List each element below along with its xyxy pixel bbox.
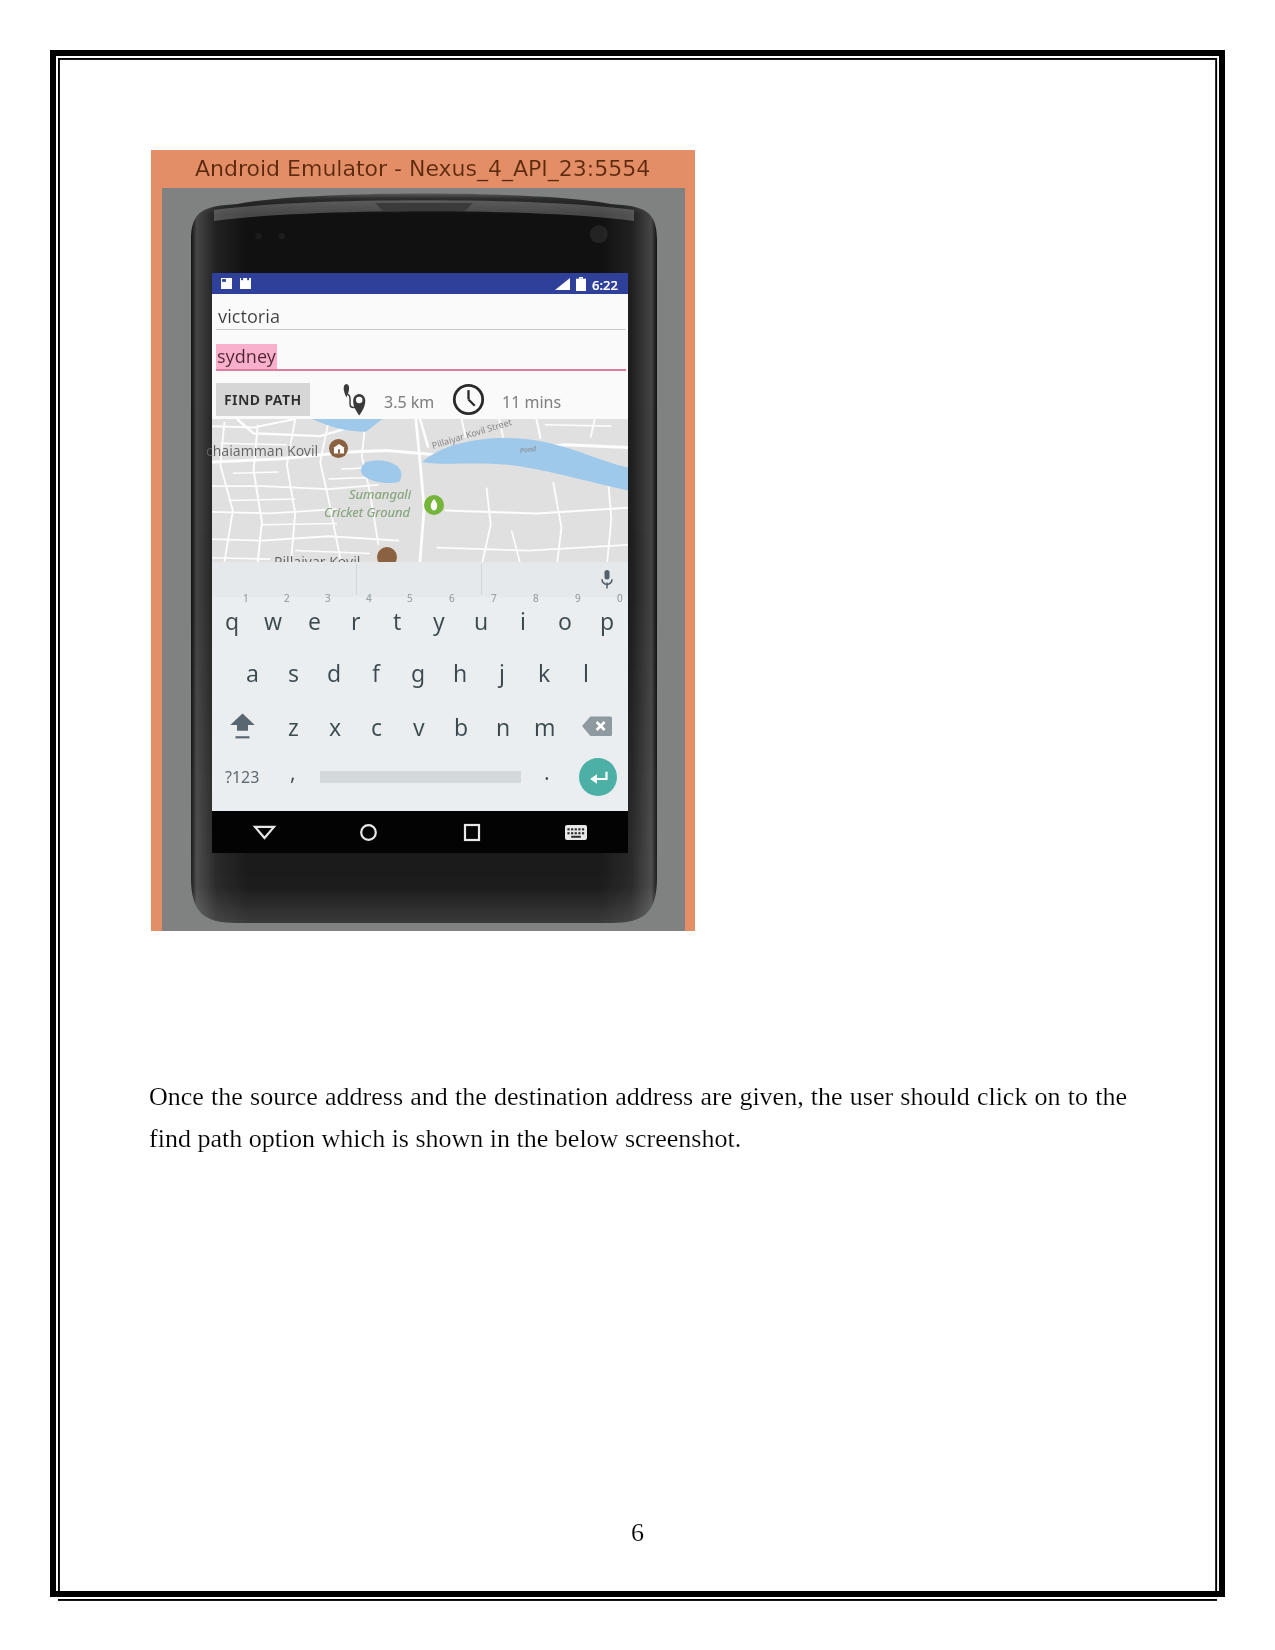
staticText: c [371, 711, 383, 742]
staticText: p [600, 605, 615, 636]
staticText: a [246, 657, 259, 688]
button[interactable]: n [482, 700, 524, 752]
button[interactable]: f [355, 646, 397, 698]
button[interactable]: 6 [418, 589, 460, 641]
staticText: g [411, 657, 426, 688]
staticText: d [327, 657, 342, 688]
staticText: 8 [533, 591, 539, 605]
button[interactable]: 5 [376, 589, 418, 641]
button[interactable]: h [439, 646, 481, 698]
button[interactable]: s [273, 646, 314, 698]
staticText: k [538, 657, 551, 688]
button[interactable]: . [527, 751, 567, 803]
button[interactable]: Home [316, 811, 420, 853]
button[interactable]: Back [212, 811, 316, 853]
staticText: sydney [217, 344, 276, 369]
staticText: 1 [243, 591, 249, 605]
staticText: x [329, 711, 342, 742]
button[interactable]: x [314, 700, 356, 752]
staticText: 11 mins [502, 391, 562, 413]
button[interactable]: Map [212, 419, 628, 562]
button[interactable]: Keyboard [524, 811, 628, 853]
button[interactable]: Shift [212, 700, 273, 752]
staticText: Pillaiyar Kovil Street [430, 415, 513, 451]
staticText: 3.5 km [384, 391, 435, 413]
staticText: 7 [491, 591, 497, 605]
staticText: 5 [407, 591, 413, 605]
staticText: 6:22 [592, 276, 618, 294]
staticText: i [520, 605, 526, 636]
staticText: h [453, 657, 468, 688]
button[interactable]: m [524, 700, 566, 752]
staticText: m [534, 711, 556, 742]
button[interactable]: FIND PATH [216, 383, 310, 416]
staticText: 6 [449, 591, 455, 605]
staticText: 0 [617, 591, 623, 605]
staticText: w [264, 605, 283, 636]
staticText: b [454, 711, 469, 742]
staticText: o [558, 605, 572, 636]
staticText: 2 [284, 591, 290, 605]
staticText: n [496, 711, 511, 742]
staticText: Pond [519, 444, 538, 456]
staticText: Sumangali [349, 485, 411, 503]
button[interactable]: j [481, 646, 523, 698]
button[interactable]: 4 [335, 589, 376, 641]
staticText: 3 [325, 591, 331, 605]
staticText: 6 [631, 1518, 644, 1547]
staticText: f [372, 657, 380, 688]
button[interactable]: l [565, 646, 607, 698]
button[interactable]: , [273, 751, 313, 803]
staticText: u [474, 605, 489, 636]
button[interactable]: 1 [212, 589, 253, 641]
button[interactable]: g [397, 646, 439, 698]
button[interactable]: k [523, 646, 565, 698]
button[interactable]: c [356, 700, 398, 752]
staticText: 4 [366, 591, 372, 605]
button[interactable]: 8 [502, 589, 544, 641]
button[interactable]: Backspace [566, 700, 628, 752]
staticText: t [393, 605, 402, 636]
button[interactable]: a [232, 646, 273, 698]
button[interactable]: Voice input [590, 562, 626, 597]
staticText: v [413, 711, 425, 742]
staticText: , [290, 758, 296, 787]
staticText: . [544, 758, 550, 787]
button[interactable]: victoria [214, 299, 626, 330]
staticText: Pillaiyar Kovil [274, 552, 361, 571]
staticText: s [288, 657, 300, 688]
staticText: z [288, 711, 299, 742]
staticText: victoria [218, 304, 280, 329]
button[interactable]: z [273, 700, 314, 752]
staticText: Once the source address and the destinat… [149, 1082, 1127, 1152]
button[interactable]: 0 [586, 589, 628, 641]
staticText: chaiamman Kovil [206, 441, 319, 460]
button[interactable]: b [440, 700, 482, 752]
button[interactable]: ?123 [212, 751, 273, 803]
staticText: FIND PATH [224, 390, 302, 409]
staticText: 9 [575, 591, 581, 605]
button[interactable]: v [398, 700, 440, 752]
button[interactable]: Enter [567, 751, 628, 803]
button[interactable]: 9 [544, 589, 586, 641]
staticText: r [351, 605, 361, 636]
staticText: l [583, 657, 589, 688]
button[interactable]: 7 [460, 589, 502, 641]
staticText: e [308, 605, 321, 636]
button[interactable]: d [314, 646, 355, 698]
button[interactable]: Recents [420, 811, 524, 853]
staticText: q [225, 605, 240, 636]
staticText: y [433, 605, 445, 636]
button[interactable]: Space [313, 751, 527, 803]
staticText: j [499, 657, 505, 688]
button[interactable]: 3 [294, 589, 335, 641]
staticText: ?123 [225, 766, 260, 788]
button[interactable]: sydney [214, 339, 626, 370]
button[interactable]: 2 [253, 589, 294, 641]
staticText: Cricket Ground [324, 503, 411, 521]
staticText: Android Emulator - Nexus_4_API_23:5554 [195, 156, 651, 182]
